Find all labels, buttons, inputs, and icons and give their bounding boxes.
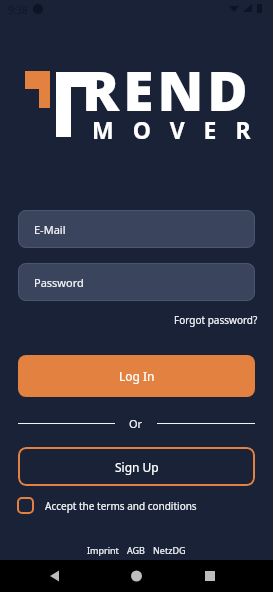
staticText: E-Mail bbox=[34, 222, 66, 237]
button[interactable]: Accept the terms and conditions bbox=[17, 497, 197, 514]
staticText: MOVER bbox=[92, 114, 270, 145]
button[interactable]: AGB bbox=[127, 544, 145, 556]
button[interactable]: Log In bbox=[18, 355, 255, 397]
button[interactable]: Imprint bbox=[87, 544, 119, 556]
button[interactable]: Password bbox=[18, 263, 255, 301]
staticText: Password bbox=[34, 275, 84, 290]
staticText: REND bbox=[82, 52, 252, 127]
button[interactable]: Sign Up bbox=[18, 447, 255, 486]
button[interactable]: NetzDG bbox=[153, 544, 186, 556]
staticText: Sign Up bbox=[115, 459, 159, 475]
staticText: Accept the terms and conditions bbox=[45, 499, 197, 513]
staticText: 9:38 bbox=[8, 3, 28, 17]
staticText: Log In bbox=[119, 368, 155, 384]
staticText: Or bbox=[129, 416, 143, 431]
button[interactable]: E-Mail bbox=[18, 210, 255, 248]
button[interactable]: Forgot password? bbox=[174, 313, 258, 327]
